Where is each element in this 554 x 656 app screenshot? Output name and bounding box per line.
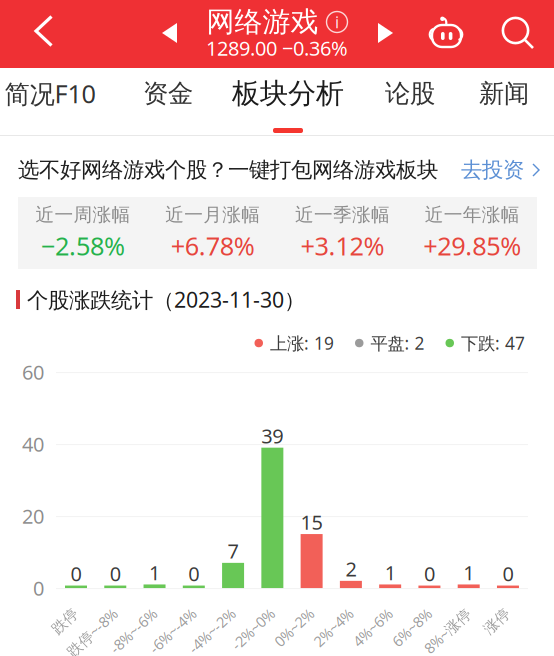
staticText: 去投资 [461, 157, 524, 183]
staticText: 6%~8% [381, 601, 429, 621]
staticText: 论股 [385, 77, 435, 109]
button[interactable]: 资金 [143, 68, 193, 135]
staticText: 1289.00 −0.36% [206, 34, 348, 62]
staticText: +29.85% [423, 228, 521, 263]
staticText: 0 [424, 560, 435, 587]
button[interactable]: Next [366, 0, 406, 66]
staticText: 15 [301, 508, 323, 536]
staticText: 网络游戏 [206, 4, 318, 40]
button[interactable]: Previous [150, 0, 190, 66]
staticText: 0 [110, 560, 121, 587]
staticText: 板块分析 [232, 76, 344, 111]
staticText: -6%~-4% [136, 601, 194, 621]
button[interactable]: 板块分析 [232, 68, 344, 135]
staticText: 60 [22, 358, 44, 386]
staticText: 1 [149, 559, 160, 586]
staticText: 2%~4% [303, 601, 351, 621]
staticText: 近一周涨幅 [35, 203, 130, 226]
staticText: 新闻 [479, 77, 529, 109]
staticText: -2%~0% [219, 601, 272, 621]
staticText: 下跌: 47 [461, 331, 525, 355]
button[interactable]: Back [16, 0, 72, 62]
staticText: 资金 [143, 77, 193, 109]
staticText: 0 [70, 560, 81, 587]
staticText: 39 [261, 422, 283, 449]
staticText: +3.12% [300, 228, 384, 263]
staticText: 跌停 [46, 602, 76, 620]
staticText: 近一年涨幅 [425, 203, 520, 226]
staticText: 涨停 [478, 602, 508, 620]
staticText: 近一季涨幅 [295, 203, 390, 226]
button[interactable]: Assistant [420, 0, 472, 65]
staticText: 0 [33, 574, 44, 602]
staticText: 近一月涨幅 [165, 203, 260, 226]
staticText: 平盘: 2 [370, 331, 424, 355]
staticText: 20 [22, 502, 44, 530]
staticText: -8%~-6% [96, 601, 154, 621]
staticText: 简况F10 [4, 76, 95, 111]
staticText: 个股涨跌统计（2023-11-30） [27, 285, 305, 314]
staticText: 上涨: 19 [270, 331, 334, 355]
button[interactable]: Search [492, 0, 544, 66]
staticText: +6.78% [171, 228, 255, 263]
staticText: 4%~6% [342, 601, 390, 621]
staticText: −2.58% [41, 228, 125, 263]
staticText: 0 [188, 560, 199, 587]
staticText: 0%~2% [264, 601, 312, 621]
staticText: 40 [22, 430, 44, 458]
button[interactable]: 简况F10 [4, 68, 95, 135]
staticText: i [335, 11, 339, 33]
staticText: 跌停~-8% [52, 601, 115, 621]
staticText: 2 [345, 555, 356, 582]
staticText: 7 [228, 537, 239, 564]
staticText: 1 [385, 559, 396, 586]
staticText: 8%~涨停 [411, 601, 469, 621]
staticText: 选不好网络游戏个股？一键打包网络游戏板块 [18, 157, 438, 183]
staticText: 0 [502, 560, 513, 587]
staticText: 1 [463, 559, 474, 586]
button[interactable]: 论股 [385, 68, 435, 135]
staticText: -4%~-2% [175, 601, 233, 621]
button[interactable]: 选不好网络游戏个股？一键打包网络游戏板块 [0, 148, 554, 192]
button[interactable]: 新闻 [479, 68, 529, 135]
